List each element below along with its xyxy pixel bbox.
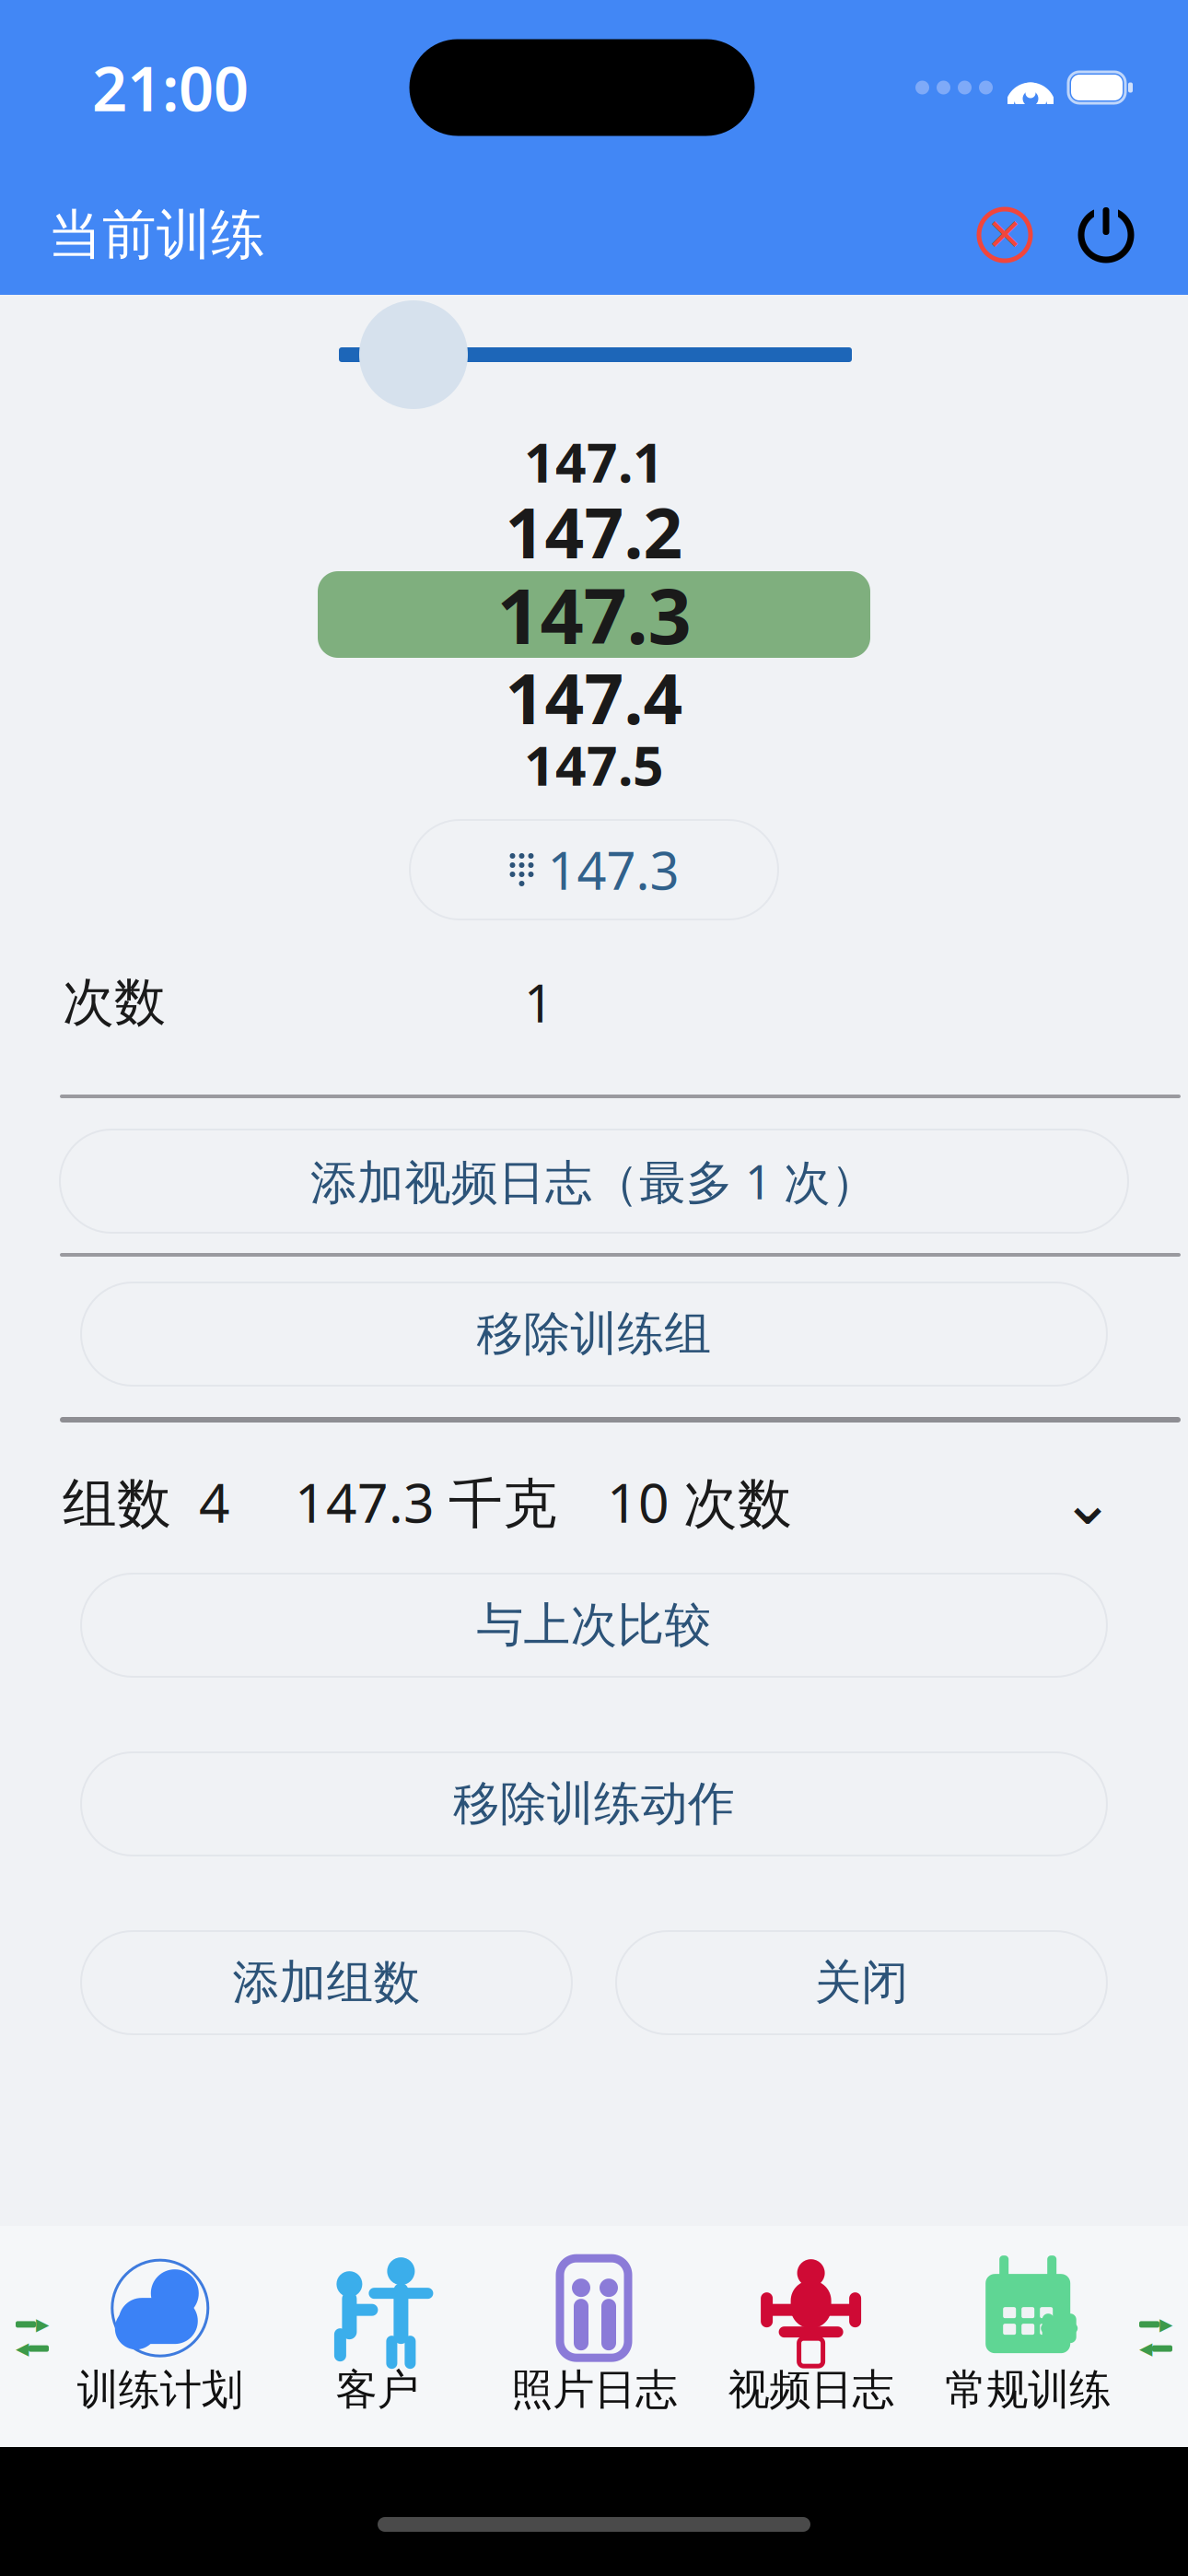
staticText: 147.3 千克 [295,1466,557,1538]
staticText: 添加组数 [233,1954,420,2011]
button[interactable]: 147.3 [410,820,778,919]
button[interactable]: 移除训练组 [81,1282,1107,1386]
staticText: 照片日志 [511,2364,677,2416]
button[interactable]: 客户 [269,2235,486,2438]
staticText: 10 次数 [607,1466,792,1538]
staticText: 视频日志 [728,2364,894,2416]
staticText: 添加视频日志（最多 1 次） [310,1150,878,1212]
button[interactable]: 添加组数 [81,1931,572,2034]
button[interactable]: 移除训练动作 [81,1752,1107,1856]
staticText: 客户 [336,2364,418,2416]
staticText: ⌄ [1061,1466,1114,1538]
staticText: 移除训练动作 [453,1775,735,1833]
staticText: 当前训练 [48,202,265,268]
button[interactable]: 关闭 [616,1931,1107,2034]
staticText: 关闭 [815,1954,908,2011]
button[interactable]: 训练计划 [52,2235,269,2438]
button[interactable]: 添加视频日志（最多 1 次） [60,1130,1128,1233]
staticText: 组数 4 [63,1466,230,1538]
staticText: 1 [524,968,553,1037]
staticText: ◀ [1139,2339,1152,2358]
staticText: 与上次比较 [477,1597,711,1654]
button[interactable]: 与上次比较 [81,1574,1107,1677]
staticText: ▶ [36,2315,49,2334]
staticText: ▶ [1159,2315,1172,2334]
staticText: 147.3 [497,564,691,665]
staticText: ✕ [986,210,1023,260]
staticText: 常规训练 [945,2364,1111,2416]
staticText: 移除训练组 [477,1305,711,1363]
staticText: 次数 [63,971,166,1034]
staticText: 147.1 [524,426,664,497]
button[interactable]: 照片日志 [486,2235,702,2438]
button[interactable]: 常规训练 [919,2235,1136,2438]
staticText: 147.3 [547,835,679,904]
button[interactable]: 重量滑块 [0,295,1188,415]
staticText: 训练计划 [77,2364,243,2416]
staticText: 147.4 [505,652,683,743]
button[interactable]: 电源 [1068,195,1144,275]
staticText: 147.5 [524,729,664,801]
staticText: 147.2 [505,486,683,577]
button[interactable]: 视频日志 [702,2235,919,2438]
button[interactable]: 结束训练 [963,193,1046,277]
button[interactable]: 组数 4 [0,1446,1188,1557]
staticText: 21:00 [92,47,249,128]
staticText: ◀ [16,2339,29,2358]
